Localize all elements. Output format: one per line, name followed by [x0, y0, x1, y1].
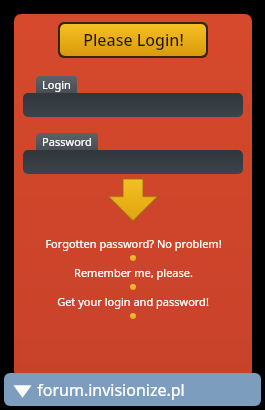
- button[interactable]: Password: [36, 133, 98, 150]
- button[interactable]: Invisionize logo: [4, 373, 261, 406]
- staticText: Password: [42, 134, 92, 149]
- staticText: Please Login!: [83, 29, 184, 51]
- staticText: Login: [42, 77, 71, 92]
- staticText: forum.invisionize.pl: [37, 379, 185, 401]
- button[interactable]: [23, 93, 243, 117]
- other: Invisionize logo: [13, 381, 32, 400]
- staticText: Get your login and password!: [57, 294, 209, 309]
- button[interactable]: Login: [36, 76, 77, 93]
- other: Submit: [108, 178, 158, 222]
- staticText: Remember me, please.: [74, 265, 193, 280]
- button[interactable]: Please Login!: [58, 22, 208, 58]
- button[interactable]: Forgotten password? No problem!: [41, 234, 226, 253]
- button[interactable]: Get your login and password!: [53, 292, 213, 311]
- button[interactable]: [23, 150, 243, 174]
- staticText: Forgotten password? No problem!: [45, 236, 222, 251]
- button[interactable]: Remember me, please.: [70, 263, 197, 282]
